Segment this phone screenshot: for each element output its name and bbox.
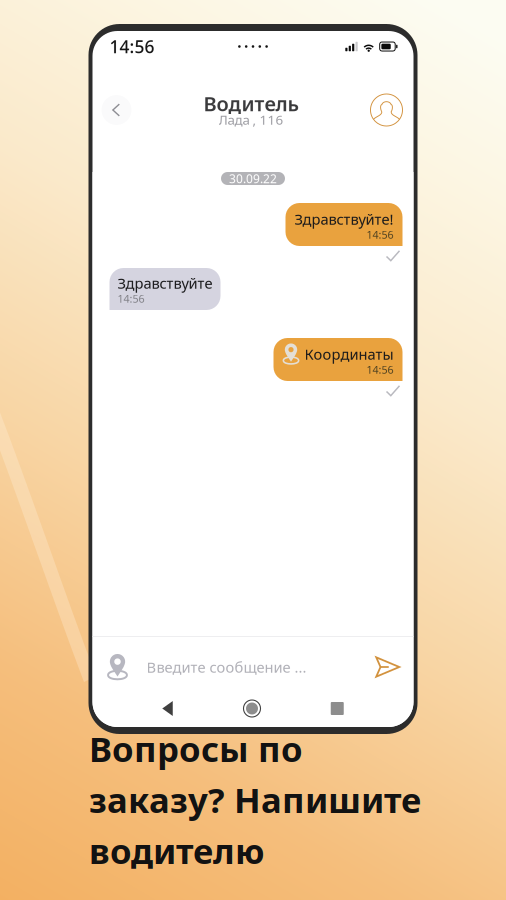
staticText: Координаты bbox=[304, 344, 393, 364]
button[interactable]: Attach location bbox=[102, 647, 132, 687]
staticText: Введите сообщение ... bbox=[146, 657, 306, 677]
staticText: Вопросы по bbox=[89, 725, 303, 771]
button[interactable]: Back bbox=[101, 95, 131, 125]
staticText: Лада , 116 bbox=[218, 111, 283, 128]
staticText: 30.09.22 bbox=[229, 170, 277, 186]
staticText: 14:56 bbox=[109, 35, 154, 58]
staticText: Здравствуйте! bbox=[294, 209, 393, 229]
button[interactable]: Send bbox=[372, 647, 402, 687]
staticText: Здравствуйте bbox=[117, 273, 212, 293]
staticText: 14:56 bbox=[366, 362, 393, 377]
staticText: водителю bbox=[89, 827, 265, 873]
staticText: 14:56 bbox=[366, 227, 393, 242]
staticText: заказу? Напишите bbox=[89, 776, 421, 822]
staticText: 14:56 bbox=[117, 291, 144, 306]
staticText: Водитель bbox=[203, 90, 298, 117]
button[interactable]: Profile bbox=[370, 94, 402, 126]
